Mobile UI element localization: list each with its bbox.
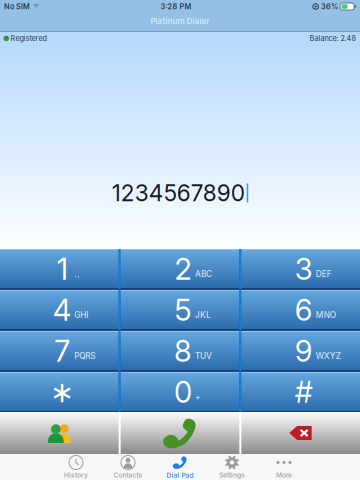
staticText: 0: [174, 374, 192, 410]
staticText: GHI: [74, 310, 88, 320]
button[interactable]: 0: [121, 372, 239, 412]
staticText: 1: [57, 251, 68, 287]
staticText: 7: [54, 333, 70, 369]
staticText: 2: [174, 251, 191, 287]
staticText: .,: [74, 269, 80, 279]
button[interactable]: 8: [121, 331, 239, 371]
staticText: MNO: [316, 310, 336, 320]
staticText: No SIM: [4, 2, 30, 11]
button[interactable]: ∗: [0, 372, 119, 412]
staticText: JKL: [195, 310, 211, 320]
button[interactable]: Contacts: [102, 454, 154, 480]
staticText: 6: [295, 292, 313, 328]
staticText: Settings: [219, 471, 245, 479]
button[interactable]: Settings: [206, 454, 258, 480]
staticText: 36%: [321, 2, 338, 11]
button[interactable]: Delete: [241, 412, 360, 454]
staticText: More: [276, 471, 292, 479]
button[interactable]: 3: [241, 249, 360, 289]
button[interactable]: 6: [241, 290, 360, 330]
staticText: 5: [174, 292, 191, 328]
button[interactable]: #: [241, 372, 360, 412]
button[interactable]: Call: [121, 412, 239, 454]
button[interactable]: 4: [0, 290, 119, 330]
staticText: 3:28 PM: [161, 2, 192, 11]
staticText: 4: [53, 292, 72, 328]
staticText: ABC: [195, 269, 212, 279]
button[interactable]: 7: [0, 331, 119, 371]
staticText: Registered: [10, 34, 46, 43]
staticText: 8: [174, 333, 192, 369]
staticText: ∗: [50, 375, 75, 409]
staticText: 3: [295, 251, 313, 287]
button[interactable]: 5: [121, 290, 239, 330]
staticText: Platinum Dialer: [150, 16, 209, 26]
staticText: 1234567890: [112, 179, 245, 207]
staticText: Balance: 2.48: [309, 34, 356, 43]
button[interactable]: 2: [121, 249, 239, 289]
staticText: PQRS: [74, 351, 95, 361]
staticText: History: [64, 471, 88, 479]
staticText: WXYZ: [316, 351, 341, 361]
staticText: DEF: [316, 269, 332, 279]
button[interactable]: 9: [241, 331, 360, 371]
button[interactable]: More: [258, 454, 310, 480]
button[interactable]: History: [50, 454, 102, 480]
staticText: +: [195, 392, 201, 402]
staticText: Dial Pad: [166, 471, 193, 479]
staticText: Contacts: [113, 471, 142, 479]
button[interactable]: Contacts: [0, 412, 119, 454]
button[interactable]: 1: [0, 249, 119, 289]
staticText: 9: [295, 333, 313, 369]
button[interactable]: Dial Pad: [154, 454, 206, 480]
staticText: TUV: [195, 351, 212, 361]
staticText: #: [295, 374, 313, 410]
